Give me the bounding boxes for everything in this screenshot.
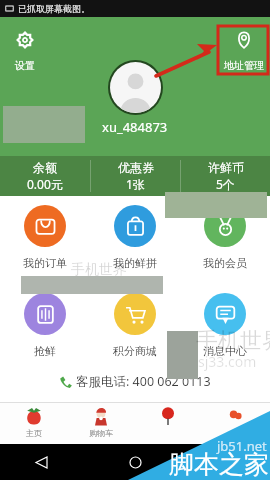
button[interactable]: 设置	[8, 32, 42, 72]
other: Back	[36, 457, 47, 468]
button[interactable]: 优惠券	[91, 156, 180, 196]
button[interactable]: 许鲜币	[181, 156, 270, 196]
staticText: 抢鲜	[34, 344, 56, 358]
staticText: sj33.com	[198, 352, 257, 371]
other: Recents	[224, 457, 234, 467]
staticText: 积分商城	[113, 344, 157, 358]
staticText: 1张	[126, 176, 145, 192]
staticText: 脚本之家	[169, 449, 269, 480]
button[interactable]: 地址管理	[223, 32, 265, 72]
button[interactable]: 抢鲜	[0, 293, 90, 358]
staticText: 地址管理	[224, 59, 264, 72]
staticText: 手机世界	[71, 261, 127, 279]
button[interactable]: 余额	[0, 156, 90, 196]
staticText: 余额	[33, 160, 57, 175]
staticText: 我的会员	[203, 256, 247, 270]
staticText: 优惠券	[118, 160, 154, 175]
staticText: 我的鲜拼	[113, 256, 157, 270]
staticText: 购物车	[89, 428, 113, 438]
button[interactable]: Tab	[202, 403, 270, 444]
button[interactable]: 我的订单	[0, 205, 90, 270]
button[interactable]: 消息中心	[180, 293, 270, 358]
button[interactable]: 购物车	[67, 403, 134, 444]
staticText: 0.00元	[27, 176, 63, 192]
button[interactable]: 客服电话: 400 062 0113	[0, 373, 270, 390]
staticText: 设置	[15, 59, 35, 72]
button[interactable]: 积分商城	[90, 293, 180, 358]
other: Home	[130, 457, 141, 468]
staticText: 许鲜币	[208, 160, 244, 175]
button[interactable]: 我的会员	[180, 205, 270, 270]
staticText: xu_484873	[102, 118, 168, 136]
staticText: 消息中心	[203, 344, 247, 358]
staticText: 主页	[26, 428, 42, 438]
button[interactable]	[110, 62, 161, 113]
button[interactable]: 主页	[0, 403, 67, 444]
staticText: 已抓取屏幕截图。	[18, 3, 90, 14]
staticText: 客服电话: 400 062 0113	[76, 373, 211, 390]
button[interactable]: 我的鲜拼	[90, 205, 180, 270]
staticText: 5个	[216, 176, 235, 192]
staticText: 我的订单	[23, 256, 67, 270]
staticText: jb51.net	[217, 437, 267, 455]
button[interactable]: Tab	[134, 403, 202, 444]
staticText: 手机世界	[196, 327, 270, 355]
